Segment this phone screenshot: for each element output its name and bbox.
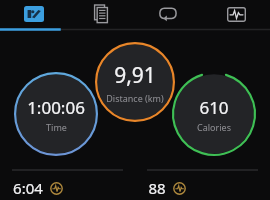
button[interactable]: Cadence 88 [135,170,270,200]
button[interactable]: Heart rate [202,0,270,28]
button[interactable]: Pace 6:04 [0,170,135,200]
staticText: 6:04 [13,178,43,198]
staticText: 610 [199,96,229,119]
button[interactable]: Laps [134,0,202,28]
button[interactable]: Calories 610 [172,72,256,156]
button[interactable]: Distance 9,91 km [95,42,175,122]
staticText: 1:00:06 [27,96,85,119]
button[interactable]: Time 1:00:06 [14,72,98,156]
staticText: 9,91 [114,61,156,90]
button[interactable]: Log [67,0,134,28]
staticText: Calories [197,121,231,133]
staticText: Distance (km) [106,92,164,104]
staticText: 88 [148,178,166,198]
button[interactable]: Activity [0,0,67,28]
staticText: Time [46,121,67,133]
